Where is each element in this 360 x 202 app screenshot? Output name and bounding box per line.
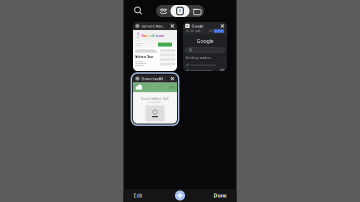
staticText: G xyxy=(186,24,188,28)
staticText: Select a Tour xyxy=(135,55,153,59)
button[interactable]: Edit xyxy=(131,190,144,201)
staticText: r xyxy=(162,33,164,38)
button[interactable]: Tab groups xyxy=(189,5,203,17)
button[interactable]: Done xyxy=(211,190,228,201)
staticText: Google xyxy=(196,37,213,45)
staticText: C xyxy=(152,33,155,38)
staticText: a xyxy=(150,33,152,38)
button[interactable]: Service Never -… xyxy=(133,22,177,71)
staticText: Service Never -… xyxy=(141,23,167,29)
staticText: o xyxy=(155,33,158,38)
staticText: Done xyxy=(213,192,226,199)
staticText: Google xyxy=(191,23,203,29)
staticText: e xyxy=(143,33,145,38)
staticText: e xyxy=(160,33,162,38)
staticText: DownloadMore… xyxy=(141,76,167,81)
button[interactable]: DownloadMore… xyxy=(131,73,179,125)
button[interactable]: Private browsing xyxy=(156,5,170,17)
button[interactable]: New tab xyxy=(175,190,185,200)
staticText: n xyxy=(145,33,148,38)
staticText: 3 xyxy=(179,9,181,13)
staticText: DownloadMore RAR xyxy=(141,97,169,101)
button[interactable]: Search tabs xyxy=(131,4,145,18)
staticText: Trending searches xyxy=(185,56,210,60)
staticText: Edit xyxy=(133,192,142,199)
staticText: S xyxy=(141,33,143,38)
staticText: v xyxy=(158,33,160,38)
button[interactable]: Tabs xyxy=(170,5,189,17)
staticText: macos, apps, filters xyxy=(148,101,162,103)
staticText: s xyxy=(148,33,150,38)
button[interactable]: G xyxy=(183,22,227,71)
